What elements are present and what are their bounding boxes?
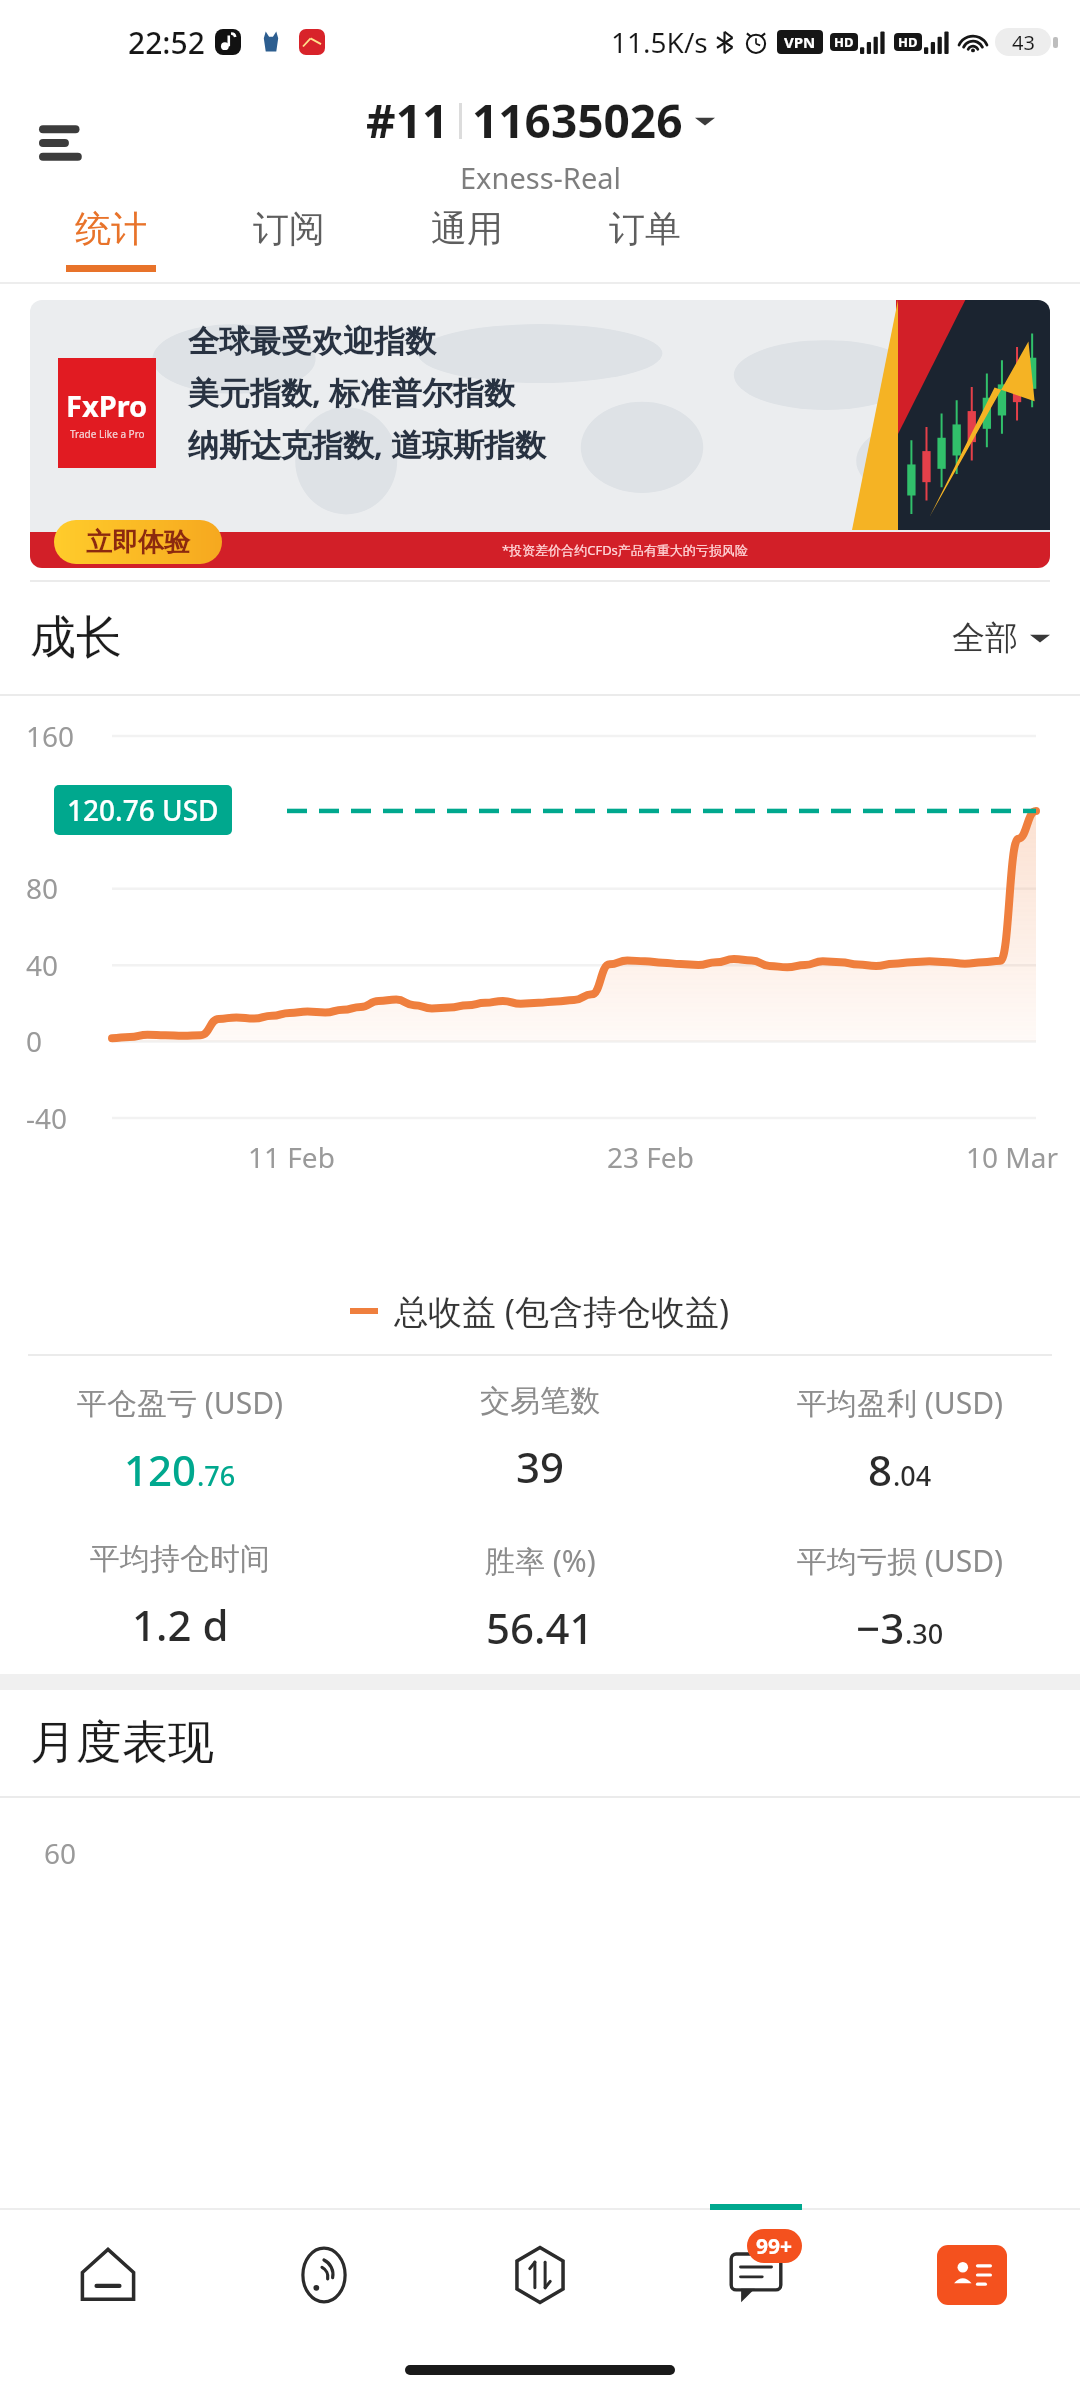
staticText: 120	[124, 1441, 197, 1498]
staticText: 22:52	[128, 22, 205, 63]
staticText: *投资差价合约CFDs产品有重大的亏损风险	[502, 541, 748, 559]
staticText: 交易笔数	[480, 1382, 600, 1420]
staticText: −3	[856, 1599, 905, 1656]
button[interactable]: 订单	[556, 202, 734, 282]
staticText: 120.76 USD	[67, 791, 219, 829]
staticText: 全部	[952, 617, 1018, 659]
staticText: 成长	[30, 609, 122, 667]
staticText: 总收益 (包含持仓收益)	[394, 1288, 730, 1334]
staticText: Exness-Real	[460, 158, 622, 197]
staticText: 8	[868, 1441, 893, 1498]
staticText: 11.5K/s	[611, 23, 708, 61]
button[interactable]: Home	[0, 2210, 216, 2340]
staticText: 160	[26, 717, 75, 755]
staticText: 39	[516, 1438, 565, 1495]
staticText: 43	[1012, 29, 1035, 56]
button[interactable]: Menu	[28, 107, 100, 179]
staticText: 平均亏损 (USD)	[797, 1540, 1004, 1581]
staticText: Trade Like a Pro	[70, 427, 145, 441]
staticText: 80	[26, 869, 59, 907]
staticText: 统计	[75, 206, 147, 251]
staticText: 40	[26, 946, 59, 984]
staticText: VPN	[784, 32, 816, 52]
button[interactable]: #11	[366, 89, 715, 152]
staticText: 99+	[756, 2232, 793, 2261]
staticText: 胜率 (%)	[485, 1540, 596, 1581]
staticText: 全球最受欢迎指数	[188, 322, 436, 361]
button[interactable]: 统计	[22, 202, 200, 282]
staticText: 平均盈利 (USD)	[797, 1382, 1004, 1423]
staticText: 通用	[431, 206, 503, 251]
button[interactable]: 全部	[952, 617, 1050, 659]
button[interactable]: Messages	[648, 2210, 864, 2340]
button[interactable]: Trade	[432, 2210, 648, 2340]
staticText: 平仓盈亏 (USD)	[77, 1382, 284, 1423]
staticText: 纳斯达克指数, 道琼斯指数	[188, 423, 546, 465]
button[interactable]: 订阅	[200, 202, 378, 282]
staticText: FxPro	[66, 386, 148, 425]
staticText: 1.2 d	[132, 1596, 229, 1653]
staticText: 平均持仓时间	[90, 1540, 270, 1578]
staticText: 11 Feb	[248, 1138, 335, 1176]
staticText: 11635026	[472, 89, 683, 152]
staticText: 订单	[609, 206, 681, 251]
staticText: .30	[905, 1615, 944, 1652]
staticText: .04	[893, 1457, 932, 1494]
button[interactable]: 通用	[378, 202, 556, 282]
staticText: 10 Mar	[966, 1138, 1058, 1176]
staticText: 0	[26, 1022, 43, 1060]
staticText: 美元指数, 标准普尔指数	[188, 371, 515, 413]
button[interactable]: FxPro advertisement	[30, 300, 1050, 568]
staticText: 23 Feb	[607, 1138, 694, 1176]
staticText: 立即体验	[86, 526, 190, 559]
staticText: 订阅	[253, 206, 325, 251]
staticText: 56.41	[486, 1599, 594, 1656]
staticText: 60	[44, 1834, 77, 1872]
staticText: 月度表现	[30, 1714, 214, 1772]
staticText: .76	[197, 1457, 236, 1494]
button[interactable]: Quotes	[216, 2210, 432, 2340]
staticText: HD	[898, 33, 918, 51]
staticText: HD	[834, 33, 854, 51]
staticText: #11	[366, 89, 449, 152]
staticText: -40	[26, 1099, 68, 1137]
button[interactable]: Profile	[864, 2210, 1080, 2340]
